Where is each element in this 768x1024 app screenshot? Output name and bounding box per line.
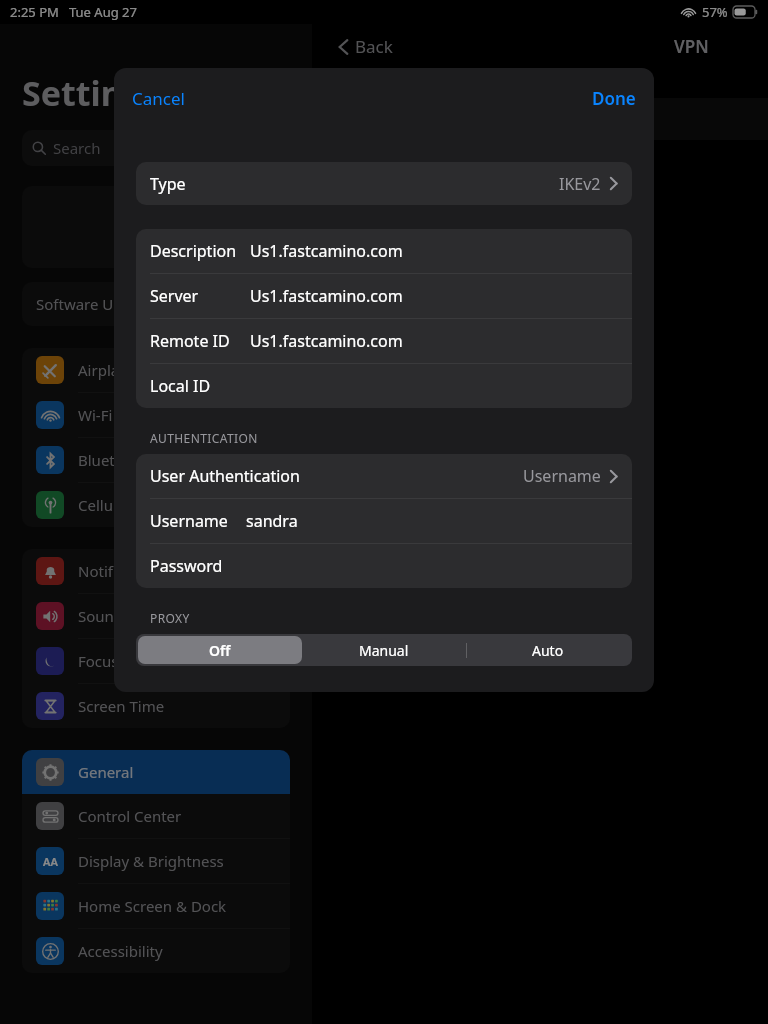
staticText: Tue Aug 27	[69, 3, 137, 21]
staticText: Bluetooth	[78, 450, 148, 470]
button[interactable]	[320, 98, 768, 140]
button[interactable]: Screen Time	[22, 684, 290, 728]
button[interactable]: Focus	[22, 639, 290, 683]
button[interactable]: Type	[136, 162, 632, 205]
staticText: Description	[150, 240, 237, 262]
staticText: Cancel	[132, 87, 185, 110]
staticText: General	[78, 762, 134, 782]
staticText: Manual	[359, 641, 409, 660]
staticText: Password	[150, 555, 223, 577]
button[interactable]: Auto	[466, 636, 630, 664]
button[interactable]: General	[22, 750, 290, 794]
staticText: Control Center	[78, 806, 182, 826]
button[interactable]: Off	[138, 636, 302, 664]
staticText: PROXY	[150, 610, 190, 626]
staticText: Username	[523, 465, 601, 487]
staticText: Off	[209, 641, 231, 660]
staticText: Airplane Mode	[78, 360, 182, 380]
staticText: sandra	[246, 510, 298, 532]
staticText: Notifications	[78, 561, 168, 581]
staticText: 2:25 PM	[10, 3, 59, 21]
staticText: Us1.fastcamino.com	[250, 285, 403, 307]
staticText: Accessibility	[78, 941, 163, 961]
staticText: Local ID	[150, 375, 211, 397]
staticText: IKEv2	[559, 173, 601, 195]
button[interactable]: Control Center	[22, 794, 290, 838]
staticText: Back	[355, 35, 393, 58]
button[interactable]: Bluetooth	[22, 438, 290, 482]
staticText: AUTHENTICATION	[150, 430, 258, 446]
button[interactable]: Software Update	[22, 282, 290, 326]
staticText: Username	[150, 510, 228, 532]
staticText: User Authentication	[150, 465, 300, 487]
staticText: Remote ID	[150, 330, 230, 352]
button[interactable]: Cellular Data	[22, 483, 290, 527]
staticText: Cellular Data	[78, 495, 169, 515]
button[interactable]: Search	[22, 130, 290, 166]
button[interactable]: Manual	[302, 636, 466, 664]
button[interactable]: Home Screen & Dock	[22, 884, 290, 928]
button[interactable]: Accessibility	[22, 929, 290, 973]
button[interactable]: Wi-Fi	[22, 393, 290, 437]
button[interactable]: Back	[334, 31, 397, 62]
staticText: Screen Time	[78, 696, 165, 716]
staticText: Sounds	[78, 606, 131, 626]
staticText: Server	[150, 285, 199, 307]
button[interactable]: AA	[22, 839, 290, 883]
staticText: Us1.fastcamino.com	[250, 240, 403, 262]
button[interactable]: Description	[136, 229, 632, 273]
staticText: 57%	[702, 3, 728, 21]
button[interactable]: Password	[136, 544, 632, 588]
staticText: Done	[592, 87, 636, 110]
button[interactable]	[22, 186, 290, 268]
button[interactable]: Server	[136, 274, 632, 318]
button[interactable]: Remote ID	[136, 319, 632, 363]
staticText: Wi-Fi	[78, 405, 113, 425]
button[interactable]: Airplane Mode	[22, 348, 290, 392]
staticText: Home Screen & Dock	[78, 896, 227, 916]
staticText: Settings	[22, 70, 162, 116]
staticText: Us1.fastcamino.com	[250, 330, 403, 352]
button[interactable]: Sounds	[22, 594, 290, 638]
staticText: Search	[53, 138, 101, 158]
button[interactable]: Username	[136, 499, 632, 543]
button[interactable]: User Authentication	[136, 454, 632, 498]
button[interactable]: Local ID	[136, 364, 632, 408]
staticText: Display & Brightness	[78, 851, 224, 871]
staticText: AA	[43, 854, 58, 869]
staticText: Type	[150, 173, 186, 195]
staticText: Focus	[78, 651, 119, 671]
button[interactable]: Done	[584, 81, 644, 116]
button[interactable]: Notifications	[22, 549, 290, 593]
staticText: VPN	[674, 35, 709, 58]
staticText: Auto	[532, 641, 564, 660]
staticText: Software Update	[36, 294, 155, 314]
button[interactable]: Cancel	[124, 81, 193, 116]
